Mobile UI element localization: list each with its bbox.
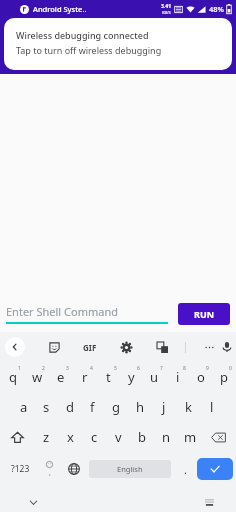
staticText: 3.41 bbox=[161, 3, 171, 10]
staticText: English bbox=[117, 464, 143, 474]
staticText: Wireless debugging connected bbox=[16, 29, 149, 41]
button[interactable]: GIF bbox=[81, 340, 99, 355]
button[interactable]: Voice input bbox=[218, 338, 236, 356]
staticText: a bbox=[20, 398, 28, 416]
staticText: w bbox=[32, 368, 43, 386]
button[interactable]: Change language bbox=[61, 452, 87, 486]
staticText: . bbox=[184, 462, 187, 477]
staticText: 5 bbox=[114, 365, 117, 372]
staticText: x bbox=[67, 428, 74, 446]
button[interactable]: o bbox=[189, 362, 212, 392]
staticText: Enter Shell Command bbox=[6, 304, 118, 319]
button[interactable]: f bbox=[81, 392, 104, 422]
button[interactable]: q bbox=[1, 362, 25, 392]
staticText: c bbox=[91, 428, 98, 446]
staticText: o bbox=[197, 368, 205, 386]
staticText: s bbox=[43, 398, 50, 416]
staticText: p bbox=[220, 368, 228, 386]
staticText: t bbox=[106, 368, 111, 386]
staticText: l bbox=[210, 398, 214, 416]
button[interactable]: j bbox=[152, 392, 176, 422]
staticText: 2 bbox=[42, 365, 45, 372]
staticText: i bbox=[176, 368, 180, 386]
button[interactable]: . bbox=[173, 452, 197, 486]
button[interactable]: d bbox=[58, 392, 81, 422]
staticText: 48% bbox=[209, 4, 224, 14]
button[interactable]: Back bbox=[5, 337, 25, 357]
staticText: KB/S bbox=[162, 10, 171, 15]
staticText: 1 bbox=[18, 365, 21, 372]
button[interactable]: u bbox=[143, 362, 166, 392]
button[interactable]: z bbox=[34, 422, 58, 452]
button[interactable]: RUN bbox=[178, 303, 230, 325]
staticText: Android Syste.. bbox=[33, 4, 87, 14]
staticText: Tap to turn off wireless debugging bbox=[16, 44, 162, 56]
button[interactable]: Backspace bbox=[202, 422, 235, 452]
staticText: f bbox=[90, 398, 95, 416]
staticText: 9 bbox=[206, 365, 209, 372]
staticText: 0 bbox=[229, 365, 232, 372]
staticText: g bbox=[112, 398, 120, 416]
button[interactable]: Emoji bbox=[37, 452, 61, 486]
staticText: v bbox=[115, 428, 122, 446]
staticText: j bbox=[162, 398, 166, 416]
button[interactable]: ?123 bbox=[3, 452, 37, 486]
button[interactable]: b bbox=[130, 422, 154, 452]
button[interactable]: Settings bbox=[117, 338, 135, 356]
button[interactable]: v bbox=[106, 422, 130, 452]
staticText: k bbox=[185, 398, 192, 416]
button[interactable]: l bbox=[200, 392, 224, 422]
button[interactable]: t bbox=[97, 362, 120, 392]
staticText: b bbox=[138, 428, 146, 446]
button[interactable]: Enter Shell Command bbox=[6, 304, 168, 324]
button[interactable]: Shift bbox=[1, 422, 34, 452]
button[interactable]: More options bbox=[200, 338, 218, 356]
button[interactable]: p bbox=[212, 362, 235, 392]
staticText: n bbox=[162, 428, 171, 446]
staticText: h bbox=[136, 398, 145, 416]
staticText: 8 bbox=[183, 365, 186, 372]
button[interactable]: h bbox=[128, 392, 152, 422]
button[interactable]: English bbox=[89, 460, 171, 478]
button[interactable]: c bbox=[82, 422, 106, 452]
staticText: u bbox=[150, 368, 159, 386]
button[interactable]: a bbox=[12, 392, 35, 422]
staticText: y bbox=[128, 368, 135, 386]
staticText: e bbox=[57, 368, 65, 386]
staticText: 3 bbox=[66, 365, 69, 372]
staticText: GIF bbox=[83, 342, 97, 353]
button[interactable]: Recent apps bbox=[202, 495, 216, 509]
button[interactable]: g bbox=[104, 392, 128, 422]
staticText: q bbox=[9, 368, 17, 386]
button[interactable]: k bbox=[176, 392, 200, 422]
button[interactable]: Hide keyboard bbox=[26, 495, 40, 509]
button[interactable]: e bbox=[49, 362, 73, 392]
button[interactable]: Wireless debugging connected bbox=[4, 18, 232, 70]
staticText: RUN bbox=[194, 308, 215, 320]
button[interactable]: s bbox=[35, 392, 58, 422]
staticText: 6 bbox=[137, 365, 140, 372]
button[interactable]: w bbox=[25, 362, 49, 392]
button[interactable]: y bbox=[120, 362, 143, 392]
staticText: m bbox=[184, 428, 197, 446]
button[interactable]: Stickers bbox=[45, 338, 63, 356]
button[interactable]: Enter bbox=[197, 458, 233, 480]
staticText: ?123 bbox=[11, 463, 30, 475]
button[interactable]: i bbox=[166, 362, 189, 392]
button[interactable]: r bbox=[73, 362, 97, 392]
button[interactable]: m bbox=[178, 422, 202, 452]
button[interactable]: n bbox=[154, 422, 178, 452]
staticText: 4 bbox=[90, 365, 93, 372]
staticText: , bbox=[49, 468, 51, 478]
staticText: 7 bbox=[160, 365, 163, 372]
staticText: z bbox=[43, 428, 50, 446]
staticText: r bbox=[82, 368, 88, 386]
staticText: d bbox=[66, 398, 74, 416]
button[interactable]: x bbox=[58, 422, 82, 452]
button[interactable]: Translate bbox=[153, 338, 171, 356]
